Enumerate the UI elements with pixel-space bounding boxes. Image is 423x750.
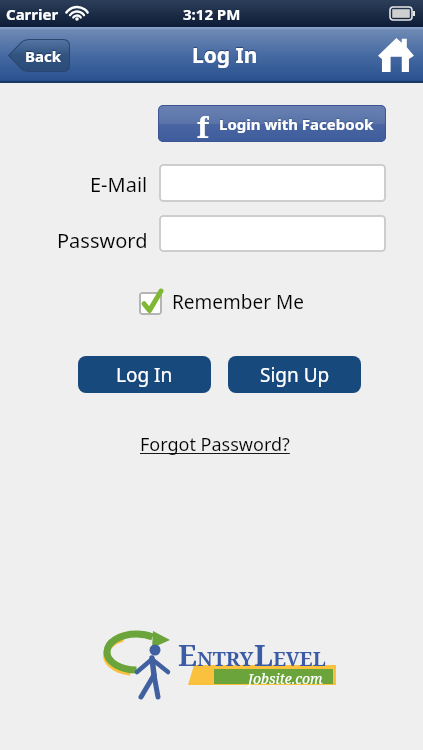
staticText: 3:12 PM bbox=[183, 4, 241, 24]
button[interactable] bbox=[378, 38, 414, 72]
button[interactable]: Log In bbox=[78, 356, 211, 393]
button[interactable]: Forgot Password? bbox=[140, 432, 290, 457]
staticText: Sign Up bbox=[260, 362, 330, 388]
staticText: Password bbox=[57, 227, 148, 254]
button[interactable]: Back bbox=[8, 39, 70, 72]
staticText: Log In bbox=[192, 41, 258, 70]
staticText: L bbox=[254, 635, 273, 674]
button[interactable]: f bbox=[158, 105, 386, 142]
staticText: Jobsite.com bbox=[248, 669, 323, 688]
button[interactable]: Remember Me bbox=[139, 289, 304, 315]
staticText: Log In bbox=[116, 362, 173, 388]
staticText: NTRY bbox=[197, 645, 254, 672]
staticText: E-Mail bbox=[90, 171, 148, 198]
button[interactable]: Sign Up bbox=[228, 356, 361, 393]
staticText: Login with Facebook bbox=[219, 114, 374, 134]
staticText: Carrier bbox=[6, 4, 59, 24]
staticText: Back bbox=[25, 46, 62, 66]
staticText: EVEL bbox=[273, 645, 326, 672]
button[interactable] bbox=[159, 164, 386, 202]
button[interactable] bbox=[159, 215, 386, 252]
staticText: f bbox=[197, 107, 209, 142]
staticText: E bbox=[178, 635, 197, 674]
staticText: Remember Me bbox=[172, 289, 304, 315]
